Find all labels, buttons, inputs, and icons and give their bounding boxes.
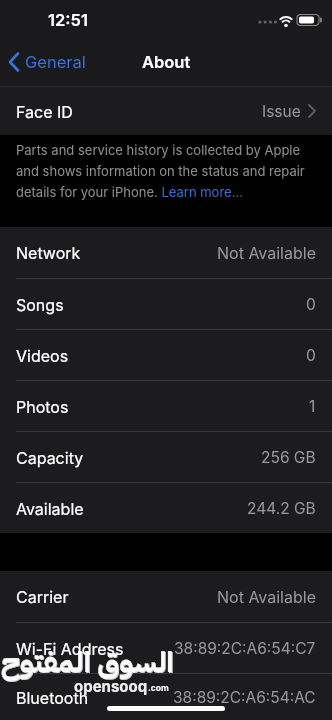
staticText: 0 — [306, 295, 316, 314]
button[interactable]: Bluetooth — [0, 674, 332, 720]
button[interactable]: Available — [0, 483, 332, 533]
button[interactable]: Photos — [0, 381, 332, 431]
staticText: General — [25, 52, 86, 72]
button[interactable]: Wi-Fi Address — [0, 623, 332, 673]
staticText: 244.2 GB — [247, 499, 316, 518]
staticText: Network — [16, 243, 81, 262]
staticText: السوق المفتوح — [2, 642, 175, 686]
staticText: Not Available — [217, 243, 316, 262]
staticText: 0 — [306, 346, 316, 365]
button[interactable]: Songs — [0, 279, 332, 329]
button[interactable]: Face ID — [0, 87, 332, 135]
button[interactable]: Carrier — [0, 571, 332, 622]
staticText: 12:51 — [48, 10, 88, 30]
button[interactable]: Capacity — [0, 432, 332, 482]
staticText: السوق المفتوح — [1, 641, 174, 685]
staticText: 256 GB — [261, 448, 316, 467]
staticText: 38:89:2C:A6:54:C7 — [174, 639, 316, 658]
staticText: .com — [148, 683, 169, 693]
staticText: Carrier — [16, 587, 69, 606]
staticText: Available — [16, 499, 84, 518]
staticText: Videos — [16, 346, 69, 365]
button[interactable]: Parts and service history is collected b… — [16, 142, 305, 200]
button[interactable]: Network — [0, 227, 332, 278]
staticText: 38:89:2C:A6:54:AC — [173, 688, 316, 707]
staticText: Face ID — [16, 102, 73, 121]
staticText: About — [142, 52, 191, 72]
staticText: Capacity — [16, 448, 84, 467]
staticText: Not Available — [217, 587, 316, 606]
staticText: Wi-Fi Address — [16, 639, 124, 658]
staticText: Songs — [16, 295, 64, 314]
button[interactable]: General — [8, 46, 86, 78]
staticText: opensooq — [74, 677, 148, 695]
staticText: Issue — [262, 102, 301, 121]
button[interactable]: Videos — [0, 330, 332, 380]
staticText: Bluetooth — [16, 688, 89, 707]
staticText: 1 — [309, 397, 316, 416]
staticText: Photos — [16, 397, 69, 416]
